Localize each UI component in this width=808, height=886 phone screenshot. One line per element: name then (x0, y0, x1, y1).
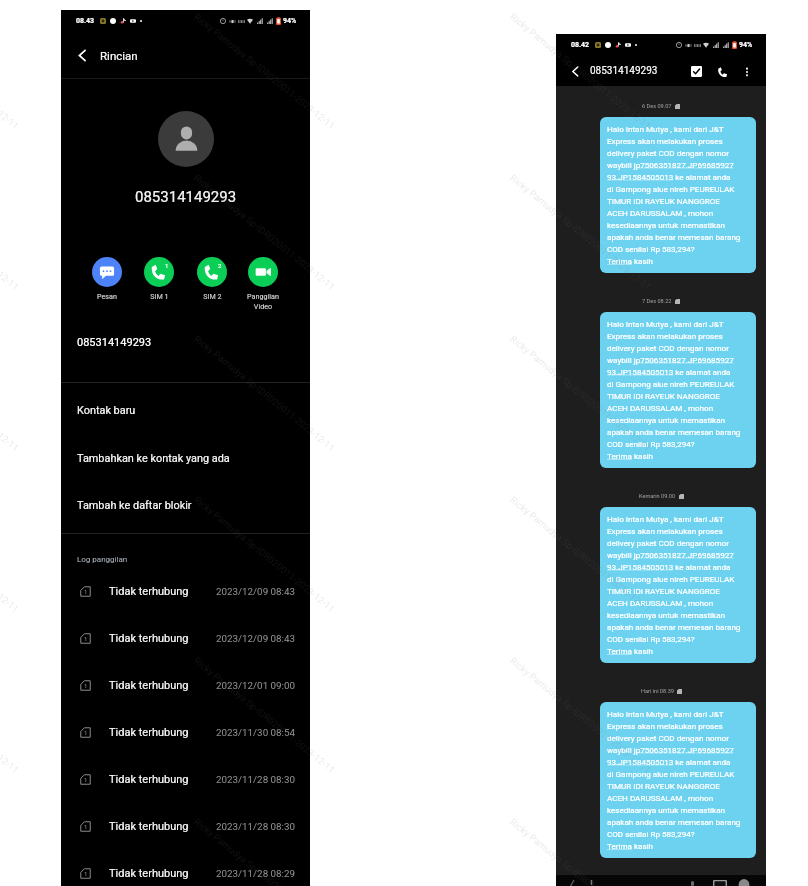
staticText: Tidak terhubung (109, 585, 189, 598)
staticText: 1 (84, 635, 88, 642)
button[interactable]: Back (567, 63, 583, 79)
button[interactable]: Panggilan Video (241, 257, 285, 310)
button[interactable]: Halo Intan Mutya , kami dari J&T Express… (600, 702, 756, 858)
staticText: 085314149293 (77, 336, 152, 349)
staticText: 1 (84, 870, 88, 877)
button[interactable]: Select messages (688, 63, 705, 80)
staticText: 1 (165, 262, 169, 269)
staticText: 2023/11/28 08:29 (216, 868, 295, 879)
staticText: Halo Intan Mutya , kami dari J&T Express… (607, 319, 741, 461)
button[interactable]: Microphone (690, 881, 695, 886)
staticText: Halo Intan Mutya , kami dari J&T Express… (607, 709, 741, 851)
staticText: Hari ini 08.39 (641, 688, 674, 695)
staticText: 1 (84, 776, 88, 783)
button[interactable]: 1 (137, 257, 181, 300)
staticText: Tidak terhubung (109, 679, 189, 692)
staticText: Ricky Pamudya Sp-IDR020011-2023-12-11 (508, 172, 653, 293)
staticText: Ricky Pamudya Sp-IDR020011-2023-12-11 (192, 655, 337, 776)
staticText: Ricky Pamudya Sp-IDR020011-2023-12-11 (192, 172, 337, 293)
staticText: 1 (84, 682, 88, 689)
staticText: 94% (739, 41, 753, 49)
staticText: 2 (218, 262, 222, 269)
staticText: Tambah ke daftar blokir (77, 499, 192, 512)
button[interactable]: Emoji (568, 880, 576, 886)
button[interactable]: 2 (190, 257, 234, 300)
button[interactable]: Halo Intan Mutya , kami dari J&T Express… (600, 117, 756, 273)
staticText: Tidak terhubung (109, 632, 189, 645)
button[interactable]: Attach (589, 880, 594, 885)
staticText: Rincian (100, 49, 138, 62)
button[interactable]: 1 (61, 850, 310, 886)
staticText: Kemarin 09.00 (639, 493, 676, 500)
button[interactable]: 1 (61, 709, 310, 755)
staticText: 2023/12/09 08:43 (216, 633, 295, 644)
button[interactable]: 1 (61, 756, 310, 802)
staticText: 1 (84, 823, 88, 830)
staticText: 1 (84, 588, 88, 595)
button[interactable]: 1 (61, 568, 310, 614)
staticText: SIM 1 (150, 292, 169, 300)
staticText: Ricky Pamudya Sp-IDR020011-2023-12-11 (192, 494, 337, 615)
staticText: 2023/11/28 08:30 (216, 774, 295, 785)
staticText: 7 Des 08.22 (642, 298, 672, 305)
button[interactable]: 085314149293 (61, 324, 310, 360)
button[interactable]: Keyboard (713, 880, 727, 886)
staticText: 085314149293 (135, 188, 237, 206)
staticText: Halo Intan Mutya , kami dari J&T Express… (607, 514, 741, 656)
staticText: Panggilan Video (247, 292, 279, 310)
staticText: 2023/12/09 08:43 (216, 586, 295, 597)
staticText: Ricky Pamudya Sp-IDR020011-2023-12-11 (508, 333, 653, 454)
button[interactable]: Call (714, 63, 731, 80)
staticText: 6 Des 09.07 (642, 103, 672, 110)
staticText: Tidak terhubung (109, 820, 189, 833)
staticText: Log panggilan (77, 555, 128, 564)
staticText: 2023/11/30 08:54 (216, 727, 295, 738)
button[interactable]: Tambahkan ke kontak yang ada (61, 435, 310, 481)
staticText: 2023/11/28 08:30 (216, 821, 295, 832)
button[interactable]: 1 (61, 662, 310, 708)
staticText: Ricky Pamudya Sp-IDR020011-2023-12-11 (192, 11, 337, 132)
staticText: Ricky Pamudya Sp-IDR020011-2023-12-11 (508, 816, 653, 886)
staticText: Tidak terhubung (109, 867, 189, 880)
staticText: Ricky Pamudya Sp-IDR020011-2023-12-11 (508, 655, 653, 776)
button[interactable]: Kontak baru (61, 387, 310, 433)
staticText: 94% (283, 17, 297, 25)
button[interactable]: More options (738, 63, 755, 80)
staticText: Tidak terhubung (109, 773, 189, 786)
staticText: 085314149293 (590, 65, 658, 77)
staticText: SIM 2 (203, 292, 222, 300)
button[interactable]: Send (738, 879, 750, 886)
button[interactable]: Rincian (61, 42, 310, 68)
staticText: Tambahkan ke kontak yang ada (77, 452, 230, 465)
button[interactable]: 1 (61, 803, 310, 849)
staticText: 08.42 (571, 41, 590, 49)
button[interactable]: Tambah ke daftar blokir (61, 482, 310, 528)
staticText: 08.43 (76, 17, 95, 25)
staticText: Kontak baru (77, 404, 136, 417)
staticText: 2023/12/01 09:00 (216, 680, 295, 691)
button[interactable]: 1 (61, 615, 310, 661)
staticText: Pesan (97, 292, 117, 300)
staticText: Ricky Pamudya Sp-IDR020011-2023-12-11 (508, 11, 653, 132)
button[interactable]: Pesan (85, 257, 129, 300)
staticText: Ricky Pamudya Sp-IDR020011-2023-12-11 (192, 816, 337, 886)
staticText: Halo Intan Mutya , kami dari J&T Express… (607, 124, 741, 266)
staticText: Ricky Pamudya Sp-IDR020011-2023-12-11 (508, 494, 653, 615)
staticText: Ricky Pamudya Sp-IDR020011-2023-12-11 (192, 333, 337, 454)
staticText: 1 (84, 729, 88, 736)
button[interactable]: Halo Intan Mutya , kami dari J&T Express… (600, 507, 756, 663)
button[interactable]: Halo Intan Mutya , kami dari J&T Express… (600, 312, 756, 468)
staticText: Tidak terhubung (109, 726, 189, 739)
